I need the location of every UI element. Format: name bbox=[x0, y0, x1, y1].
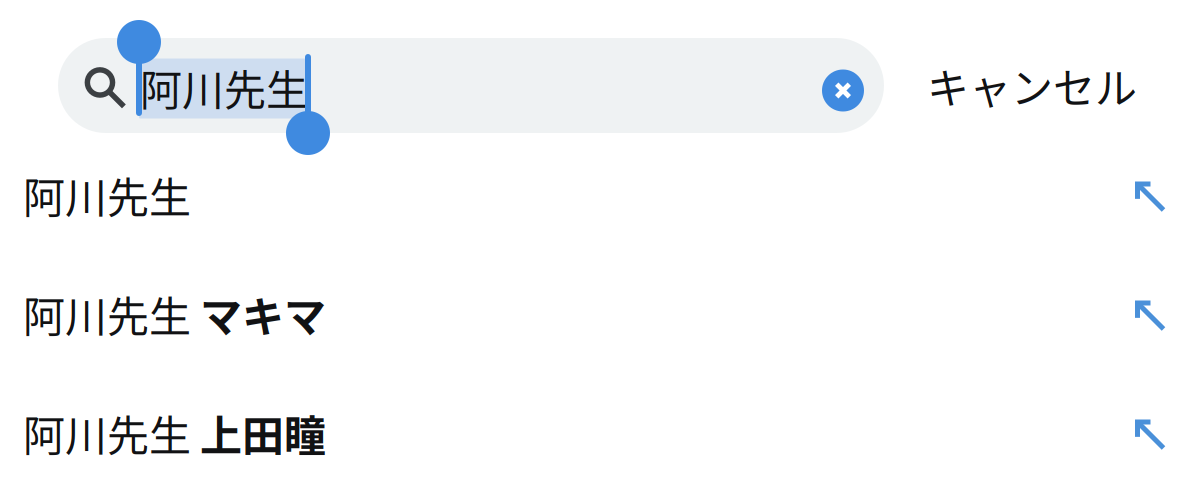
staticText: 阿川先生 bbox=[140, 57, 308, 118]
staticText: 阿川先生 bbox=[23, 165, 191, 225]
staticText: 阿川先生 bbox=[23, 284, 191, 344]
staticText: キャンセル bbox=[927, 55, 1137, 116]
staticText: 阿川先生 bbox=[23, 403, 191, 463]
button[interactable]: キャンセル bbox=[902, 38, 1162, 133]
button[interactable]: Clear search text bbox=[822, 69, 864, 111]
staticText: 上田瞳 bbox=[200, 403, 326, 463]
staticText: マキマ bbox=[200, 284, 326, 344]
button[interactable]: 阿川先生 bbox=[0, 373, 1200, 485]
button[interactable]: 阿川先生 bbox=[0, 135, 1200, 254]
button[interactable]: 阿川先生 bbox=[0, 254, 1200, 373]
